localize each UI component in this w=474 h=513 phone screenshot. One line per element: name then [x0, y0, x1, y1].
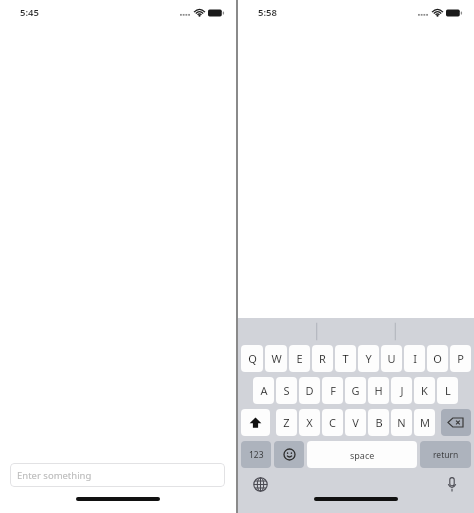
button[interactable]: H: [368, 377, 389, 404]
button[interactable]: Q: [241, 345, 263, 372]
staticText: 123: [249, 449, 264, 461]
button[interactable]: F: [322, 377, 343, 404]
button[interactable]: E: [289, 345, 310, 372]
button[interactable]: I: [404, 345, 425, 372]
staticText: T: [342, 351, 349, 366]
button[interactable]: C: [322, 409, 343, 436]
button[interactable]: return: [420, 441, 471, 468]
staticText: O: [433, 351, 442, 366]
button[interactable]: D: [299, 377, 320, 404]
staticText: D: [305, 383, 314, 398]
staticText: L: [445, 383, 451, 398]
button[interactable]: S: [276, 377, 297, 404]
staticText: F: [330, 383, 336, 398]
button[interactable]: T: [335, 345, 356, 372]
button[interactable]: Z: [276, 409, 297, 436]
button[interactable]: Dictation: [441, 473, 463, 495]
button[interactable]: G: [345, 377, 366, 404]
staticText: C: [329, 415, 336, 430]
staticText: 5:45: [20, 6, 39, 19]
staticText: Y: [365, 351, 372, 366]
button[interactable]: Shift: [241, 409, 270, 436]
button[interactable]: space: [307, 441, 417, 468]
staticText: H: [374, 383, 383, 398]
staticText: W: [271, 351, 282, 366]
button[interactable]: 123: [241, 441, 271, 468]
button[interactable]: M: [414, 409, 435, 436]
staticText: S: [283, 383, 290, 398]
staticText: A: [260, 383, 268, 398]
staticText: Z: [283, 415, 290, 430]
staticText: K: [421, 383, 428, 398]
button[interactable]: Switch keyboard: [249, 473, 271, 495]
staticText: return: [433, 449, 459, 461]
staticText: Q: [248, 351, 257, 366]
button[interactable]: B: [368, 409, 389, 436]
button[interactable]: Emoji: [274, 441, 304, 468]
button[interactable]: U: [381, 345, 402, 372]
button[interactable]: Enter something: [10, 463, 225, 487]
staticText: B: [375, 415, 383, 430]
button[interactable]: K: [414, 377, 435, 404]
button[interactable]: W: [265, 345, 287, 372]
staticText: Enter something: [17, 469, 92, 482]
button[interactable]: O: [427, 345, 448, 372]
staticText: X: [306, 415, 313, 430]
button[interactable]: A: [253, 377, 274, 404]
button[interactable]: Y: [358, 345, 379, 372]
staticText: R: [319, 351, 326, 366]
staticText: I: [413, 351, 417, 366]
button[interactable]: N: [391, 409, 412, 436]
staticText: V: [352, 415, 359, 430]
staticText: N: [397, 415, 406, 430]
staticText: E: [296, 351, 303, 366]
staticText: space: [350, 449, 375, 461]
staticText: G: [351, 383, 360, 398]
button[interactable]: J: [391, 377, 412, 404]
button[interactable]: R: [312, 345, 333, 372]
button[interactable]: L: [437, 377, 458, 404]
staticText: 5:58: [258, 6, 277, 19]
button[interactable]: V: [345, 409, 366, 436]
button[interactable]: X: [299, 409, 320, 436]
staticText: M: [420, 415, 430, 430]
button[interactable]: Backspace: [441, 409, 471, 436]
staticText: J: [400, 383, 404, 398]
staticText: U: [387, 351, 396, 366]
staticText: P: [457, 351, 464, 366]
button[interactable]: P: [450, 345, 471, 372]
